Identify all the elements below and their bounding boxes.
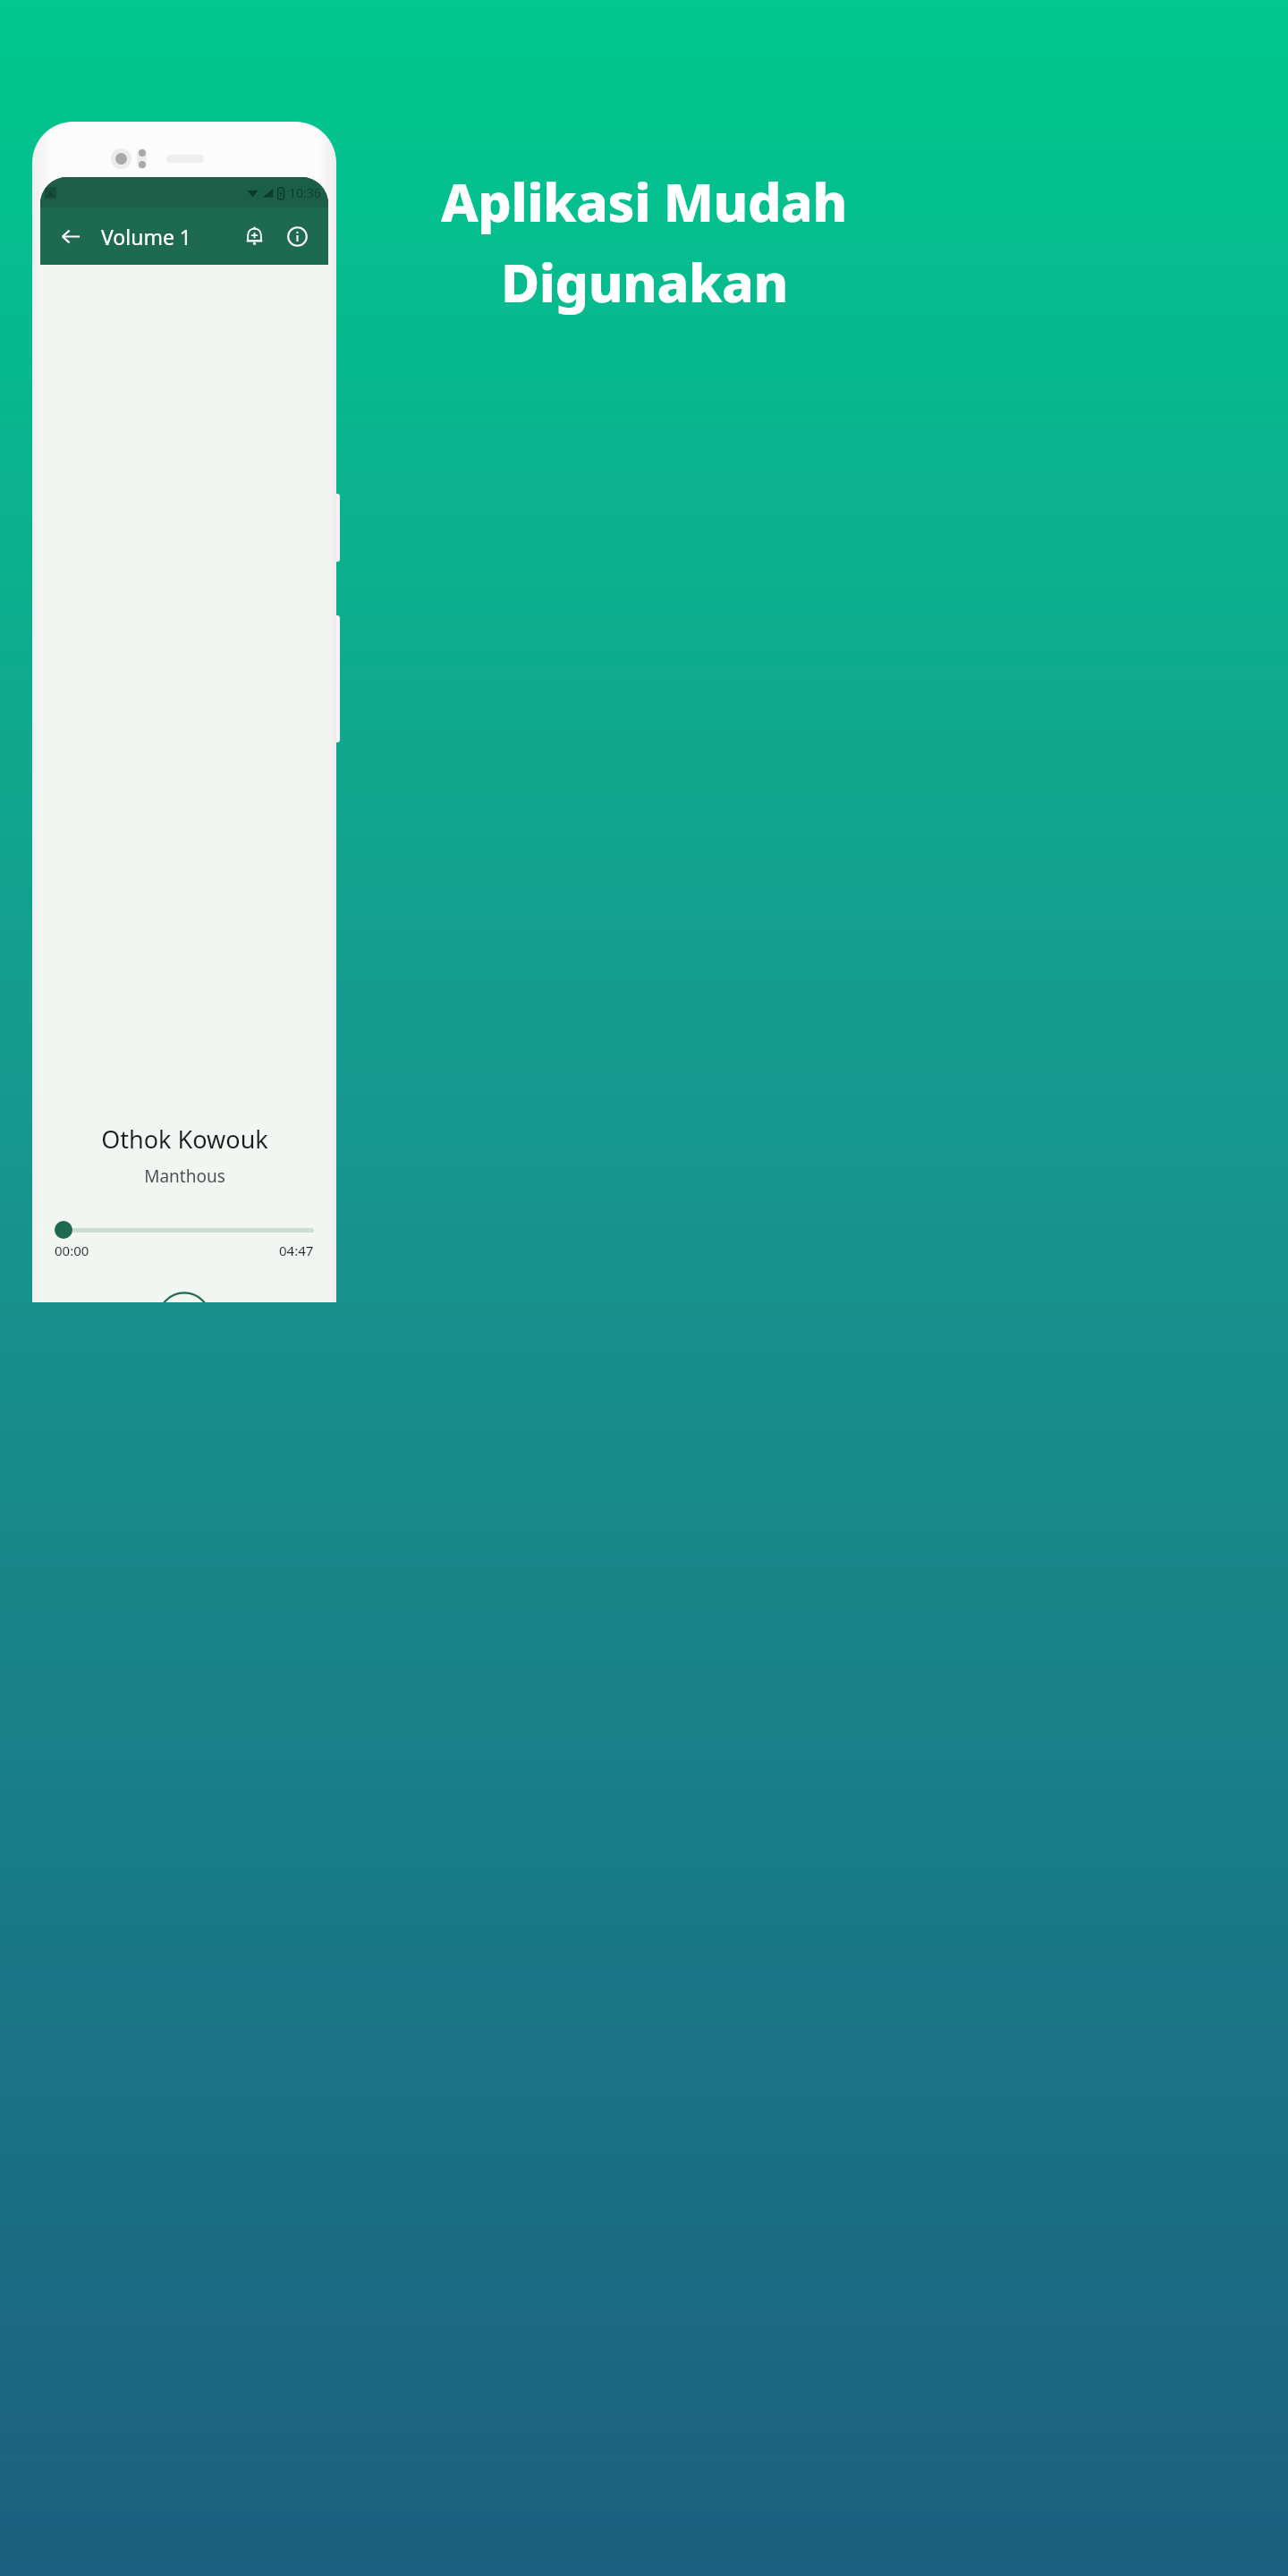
staticText: Aplikasi Mudah xyxy=(441,165,847,237)
staticText: 00:00 xyxy=(55,1241,89,1259)
staticText: Digunakan xyxy=(501,246,788,318)
button[interactable]: Add alarm xyxy=(235,217,273,255)
button[interactable]: Back xyxy=(53,218,89,254)
staticText: Othok Kowouk xyxy=(101,1123,268,1156)
staticText: Manthous xyxy=(144,1165,225,1188)
button[interactable]: Seek bar xyxy=(55,1220,314,1240)
staticText: 10:36 xyxy=(289,184,321,201)
staticText: Volume 1 xyxy=(101,223,192,250)
staticText: 04:47 xyxy=(279,1241,314,1259)
button[interactable]: Info xyxy=(278,217,316,255)
staticText: A xyxy=(47,188,54,199)
button[interactable]: Play xyxy=(156,1290,213,1302)
